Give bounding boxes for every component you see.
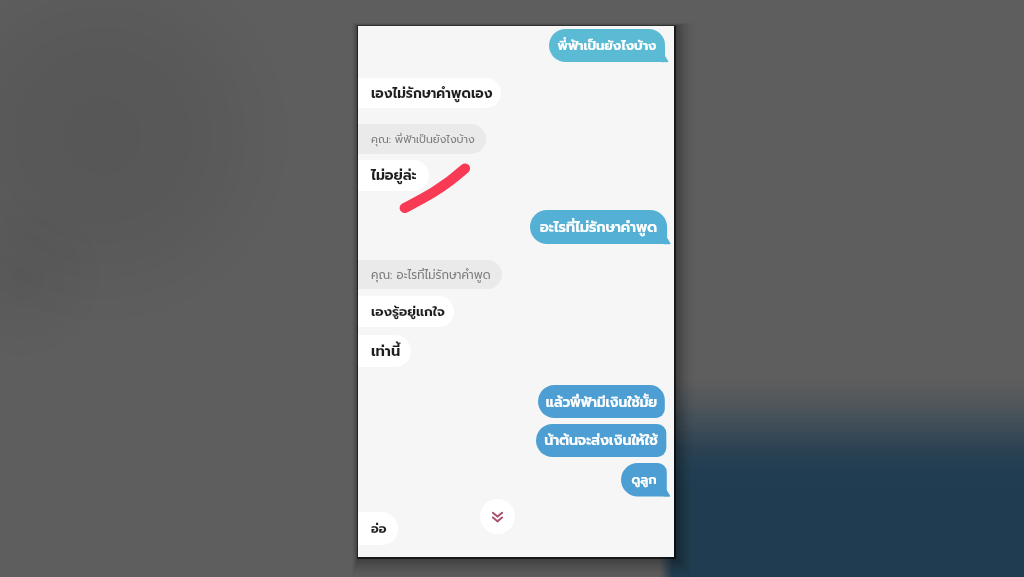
button[interactable]: แล้วพี่ฟ้ามีเงินใช้มั้ย: [538, 385, 672, 421]
staticText: เองไม่รักษาคำพูดเอง: [371, 83, 493, 103]
staticText: น้าต้นจะส่งเงินให้ใช้: [536, 430, 666, 453]
button[interactable]: ดูลูก: [621, 463, 674, 500]
button[interactable]: อ่อ: [358, 512, 398, 545]
button[interactable]: Scroll to bottom: [480, 499, 515, 534]
button[interactable]: พี่ฟ้าเป็นยังไงบ้าง: [549, 29, 672, 65]
button[interactable]: คุณ: พี่ฟ้าเป็นยังไงบ้าง: [358, 124, 486, 154]
button[interactable]: เท่านี้: [358, 335, 411, 367]
button[interactable]: ไม่อยู่ล่ะ: [358, 160, 429, 191]
button[interactable]: เองไม่รักษาคำพูดเอง: [358, 78, 501, 108]
staticText: อะไรที่ไม่รักษาคำพูด: [530, 217, 667, 240]
button[interactable]: อะไรที่ไม่รักษาคำพูด: [530, 210, 674, 247]
staticText: ดูลูก: [621, 470, 667, 490]
staticText: พี่ฟ้าเป็นยังไงบ้าง: [549, 36, 665, 57]
staticText: อ่อ: [371, 519, 387, 538]
button[interactable]: น้าต้นจะส่งเงินให้ใช้: [536, 424, 673, 460]
staticText: ไม่อยู่ล่ะ: [371, 165, 417, 186]
staticText: แล้วพี่ฟ้ามีเงินใช้มั้ย: [538, 392, 665, 414]
button[interactable]: คุณ: อะไรที่ไม่รักษาคำพูด: [358, 260, 502, 289]
button[interactable]: เองรู้อยู่แกใจ: [358, 296, 454, 327]
staticText: คุณ: พี่ฟ้าเป็นยังไงบ้าง: [371, 131, 475, 147]
staticText: เท่านี้: [371, 340, 401, 362]
staticText: เองรู้อยู่แกใจ: [371, 302, 445, 322]
staticText: คุณ: อะไรที่ไม่รักษาคำพูด: [371, 266, 491, 284]
